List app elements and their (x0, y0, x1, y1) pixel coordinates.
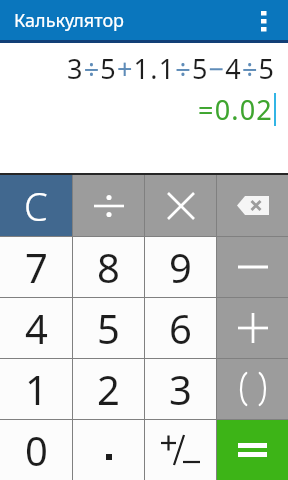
button[interactable] (145, 420, 216, 480)
staticText: 8 (97, 240, 120, 294)
button[interactable]: 3 (145, 359, 216, 419)
staticText: =0.02 (198, 91, 274, 128)
button[interactable]: C (0, 175, 72, 236)
button[interactable]: 0 (0, 420, 72, 480)
button[interactable] (217, 237, 288, 297)
button[interactable]: 6 (145, 298, 216, 358)
staticText: 0 (25, 423, 48, 477)
button[interactable] (73, 175, 144, 236)
button[interactable] (248, 0, 288, 40)
button[interactable] (217, 359, 288, 419)
button[interactable]: 9 (145, 237, 216, 297)
button[interactable] (217, 420, 288, 480)
staticText: 3÷5+1.1÷5−4÷5 (67, 50, 276, 87)
button[interactable]: 2 (73, 359, 144, 419)
staticText: 1 (25, 362, 48, 416)
button[interactable] (73, 420, 144, 480)
staticText: 6 (169, 301, 192, 355)
staticText: 5 (97, 301, 120, 355)
button[interactable] (217, 298, 288, 358)
button[interactable]: 4 (0, 298, 72, 358)
staticText: Калькулятор (14, 8, 125, 33)
button[interactable] (217, 175, 288, 236)
button[interactable]: 5 (73, 298, 144, 358)
staticText: C (24, 180, 48, 232)
staticText: 3 (169, 362, 192, 416)
button[interactable]: 7 (0, 237, 72, 297)
staticText: 9 (169, 240, 192, 294)
staticText: 7 (25, 240, 48, 294)
button[interactable] (145, 175, 216, 236)
button[interactable]: 8 (73, 237, 144, 297)
button[interactable]: 1 (0, 359, 72, 419)
staticText: 4 (25, 301, 48, 355)
staticText: 2 (97, 362, 120, 416)
